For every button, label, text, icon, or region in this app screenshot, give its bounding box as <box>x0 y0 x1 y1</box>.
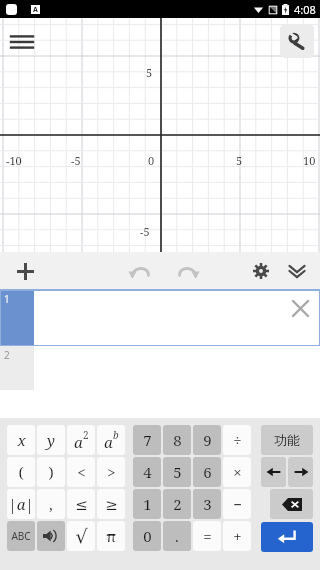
button[interactable]: ÷ <box>223 425 251 455</box>
staticText: > <box>107 462 116 482</box>
staticText: ABC <box>11 529 31 543</box>
staticText: 3 <box>203 494 212 514</box>
staticText: 9 <box>203 430 212 450</box>
staticText: 0 <box>148 153 155 168</box>
staticText: x <box>17 430 26 450</box>
staticText: . <box>175 526 179 546</box>
staticText: ÷ <box>233 430 242 450</box>
button[interactable]: < <box>67 457 95 487</box>
staticText: ≥ <box>105 496 118 513</box>
staticText: A <box>33 5 38 14</box>
button[interactable]: 0 <box>133 521 161 551</box>
staticText: y <box>47 430 55 450</box>
staticText: 7 <box>143 430 152 450</box>
button[interactable]: 1 <box>0 290 320 346</box>
button[interactable]: 9 <box>193 425 221 455</box>
button[interactable]: ) <box>37 457 65 487</box>
staticText: π <box>106 526 116 546</box>
staticText: a <box>104 432 113 452</box>
staticText: 10 <box>303 153 316 168</box>
staticText: = <box>203 526 212 546</box>
button[interactable]: Delete expression <box>286 294 314 322</box>
staticText: -10 <box>6 153 22 168</box>
button[interactable]: 4 <box>133 457 161 487</box>
button[interactable]: Add expression <box>8 254 42 288</box>
staticText: 5 <box>146 65 153 80</box>
staticText: √ <box>75 525 88 547</box>
button[interactable]: ( <box>7 457 35 487</box>
button[interactable]: 1 <box>133 489 161 519</box>
button[interactable]: 7 <box>133 425 161 455</box>
staticText: + <box>233 526 242 546</box>
staticText: 4:08 <box>294 2 316 17</box>
button[interactable]: 6 <box>193 457 221 487</box>
button[interactable]: 3 <box>193 489 221 519</box>
button[interactable]: a <box>97 425 125 455</box>
button[interactable]: π <box>97 521 125 551</box>
button[interactable]: > <box>97 457 125 487</box>
button[interactable]: Settings <box>244 254 278 288</box>
button[interactable]: . <box>163 521 191 551</box>
button[interactable]: Collapse <box>280 254 314 288</box>
button[interactable]: Move left <box>261 457 286 487</box>
button[interactable]: √ <box>67 521 95 551</box>
staticText: 2 <box>173 494 182 514</box>
staticText: |a| <box>8 494 34 514</box>
button[interactable]: Move right <box>288 457 313 487</box>
button[interactable]: ≥ <box>97 489 125 519</box>
staticText: × <box>233 462 242 482</box>
staticText: -5 <box>71 153 81 168</box>
staticText: -5 <box>140 224 150 239</box>
button[interactable]: a <box>67 425 95 455</box>
staticText: 1 <box>4 292 10 306</box>
staticText: 4 <box>143 462 152 482</box>
button[interactable]: − <box>223 489 251 519</box>
staticText: 2 <box>83 428 89 442</box>
button[interactable]: |a| <box>7 489 35 519</box>
button[interactable]: 8 <box>163 425 191 455</box>
button[interactable]: Redo <box>171 254 205 288</box>
staticText: 0 <box>143 526 152 546</box>
staticText: 6 <box>203 462 212 482</box>
button[interactable]: 2 <box>0 346 320 390</box>
staticText: a <box>74 432 83 452</box>
staticText: < <box>77 462 86 482</box>
button[interactable]: y <box>37 425 65 455</box>
button[interactable]: Backspace <box>270 489 313 519</box>
staticText: 8 <box>173 430 182 450</box>
staticText: − <box>233 494 242 514</box>
button[interactable]: 功能 <box>261 425 313 455</box>
button[interactable]: ≤ <box>67 489 95 519</box>
staticText: 2 <box>4 348 10 362</box>
staticText: 1 <box>143 494 152 514</box>
staticText: ≤ <box>75 496 88 513</box>
staticText: 5 <box>173 462 182 482</box>
button[interactable]: × <box>223 457 251 487</box>
staticText: ) <box>48 462 54 482</box>
button[interactable]: 2 <box>163 489 191 519</box>
button[interactable]: Graph settings <box>280 24 314 58</box>
button[interactable]: x <box>7 425 35 455</box>
button[interactable]: = <box>193 521 221 551</box>
staticText: 功能 <box>274 432 300 448</box>
button[interactable]: Menu <box>6 26 38 58</box>
button[interactable]: Enter <box>261 522 313 552</box>
button[interactable]: Sound <box>37 521 65 551</box>
button[interactable]: 5 <box>163 457 191 487</box>
staticText: 5 <box>236 153 243 168</box>
staticText: b <box>113 428 119 442</box>
staticText: ( <box>18 462 24 482</box>
button[interactable]: Undo <box>123 254 157 288</box>
button[interactable]: ABC <box>7 521 35 551</box>
button[interactable]: , <box>37 489 65 519</box>
staticText: , <box>49 494 53 514</box>
button[interactable]: + <box>223 521 251 551</box>
